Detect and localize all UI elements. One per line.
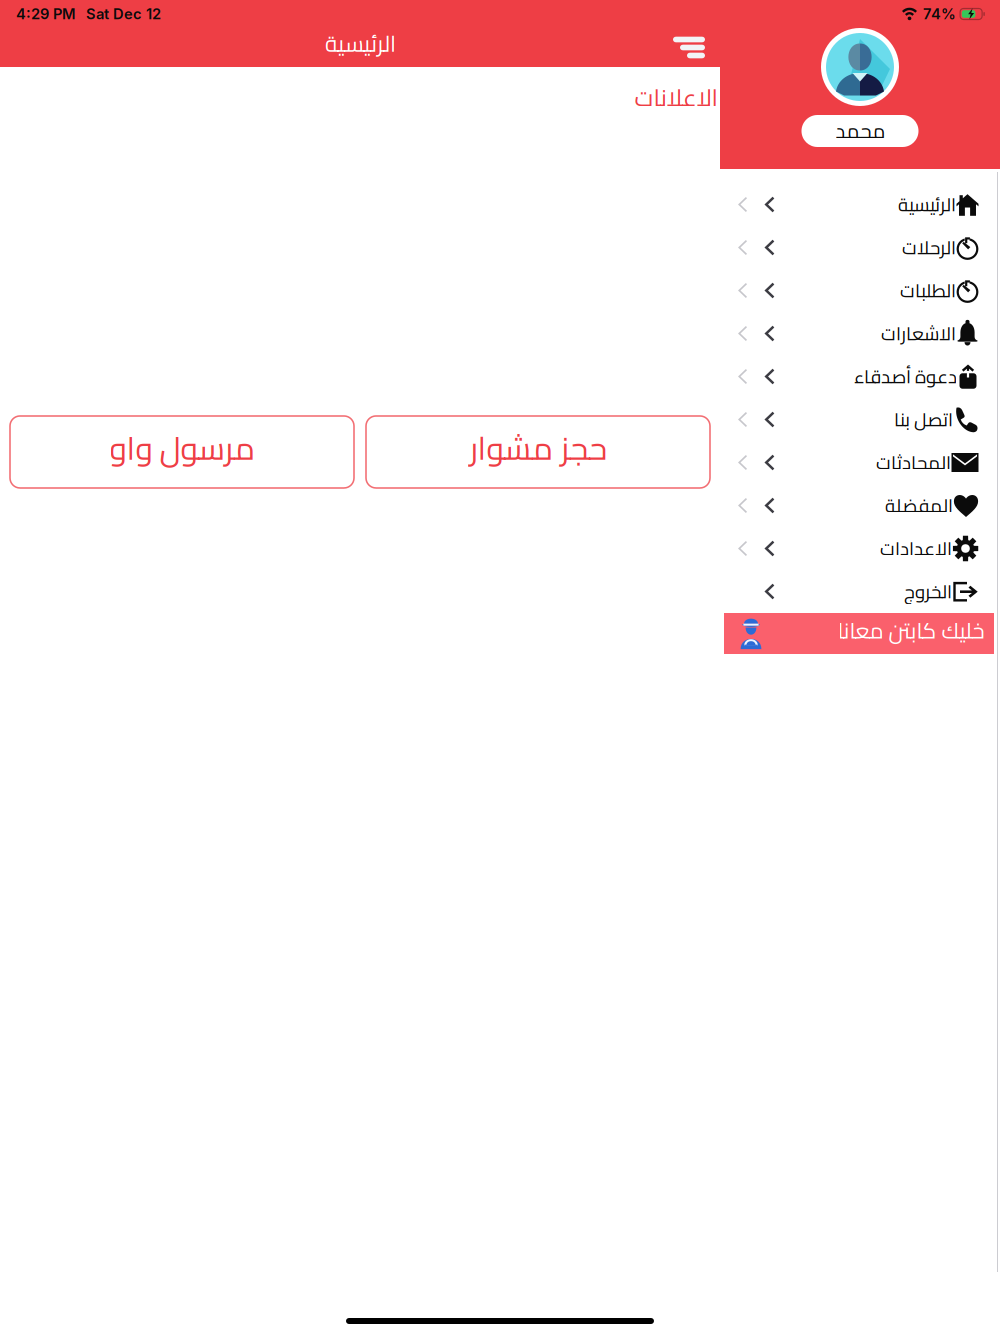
staticText: المفضلة — [884, 488, 952, 523]
button[interactable]: الطلبات — [720, 269, 1000, 312]
button[interactable]: الخروج — [720, 570, 1000, 613]
button[interactable]: المحادثات — [720, 441, 1000, 484]
staticText: الرحلات — [901, 230, 955, 265]
staticText: مرسول واو — [109, 418, 255, 478]
staticText: الخروج — [903, 574, 951, 609]
staticText: الرئيسية — [324, 22, 395, 65]
button[interactable]: الرئيسية — [720, 183, 1000, 226]
button[interactable]: اتصل بنا — [720, 398, 1000, 441]
staticText: المحادثات — [875, 445, 950, 480]
staticText: الطلبات — [899, 273, 955, 308]
staticText: الرئيسية — [897, 187, 955, 222]
button[interactable]: خليك كابتن معانا — [724, 613, 994, 654]
button[interactable]: المفضلة — [720, 484, 1000, 527]
staticText: خليك كابتن معانا — [837, 610, 984, 651]
button[interactable]: Menu — [664, 28, 714, 66]
staticText: الاشعارات — [880, 316, 955, 351]
button[interactable]: حجز مشوار — [366, 416, 710, 488]
staticText: دعوة أصدقاء — [853, 359, 956, 394]
button[interactable]: دعوة أصدقاء — [720, 355, 1000, 398]
staticText: 74% — [923, 5, 956, 23]
staticText: الاعدادات — [879, 531, 951, 566]
button[interactable]: الاشعارات — [720, 312, 1000, 355]
button[interactable]: مرسول واو — [10, 416, 354, 488]
staticText: حجز مشوار — [469, 418, 607, 478]
staticText: الاعلانات — [634, 75, 717, 120]
staticText: 4:29 PM — [16, 5, 76, 23]
staticText: Sat Dec 12 — [86, 5, 161, 23]
staticText: اتصل بنا — [893, 402, 952, 437]
button[interactable]: الاعدادات — [720, 527, 1000, 570]
button[interactable]: الرحلات — [720, 226, 1000, 269]
staticText: محمد — [835, 112, 885, 150]
